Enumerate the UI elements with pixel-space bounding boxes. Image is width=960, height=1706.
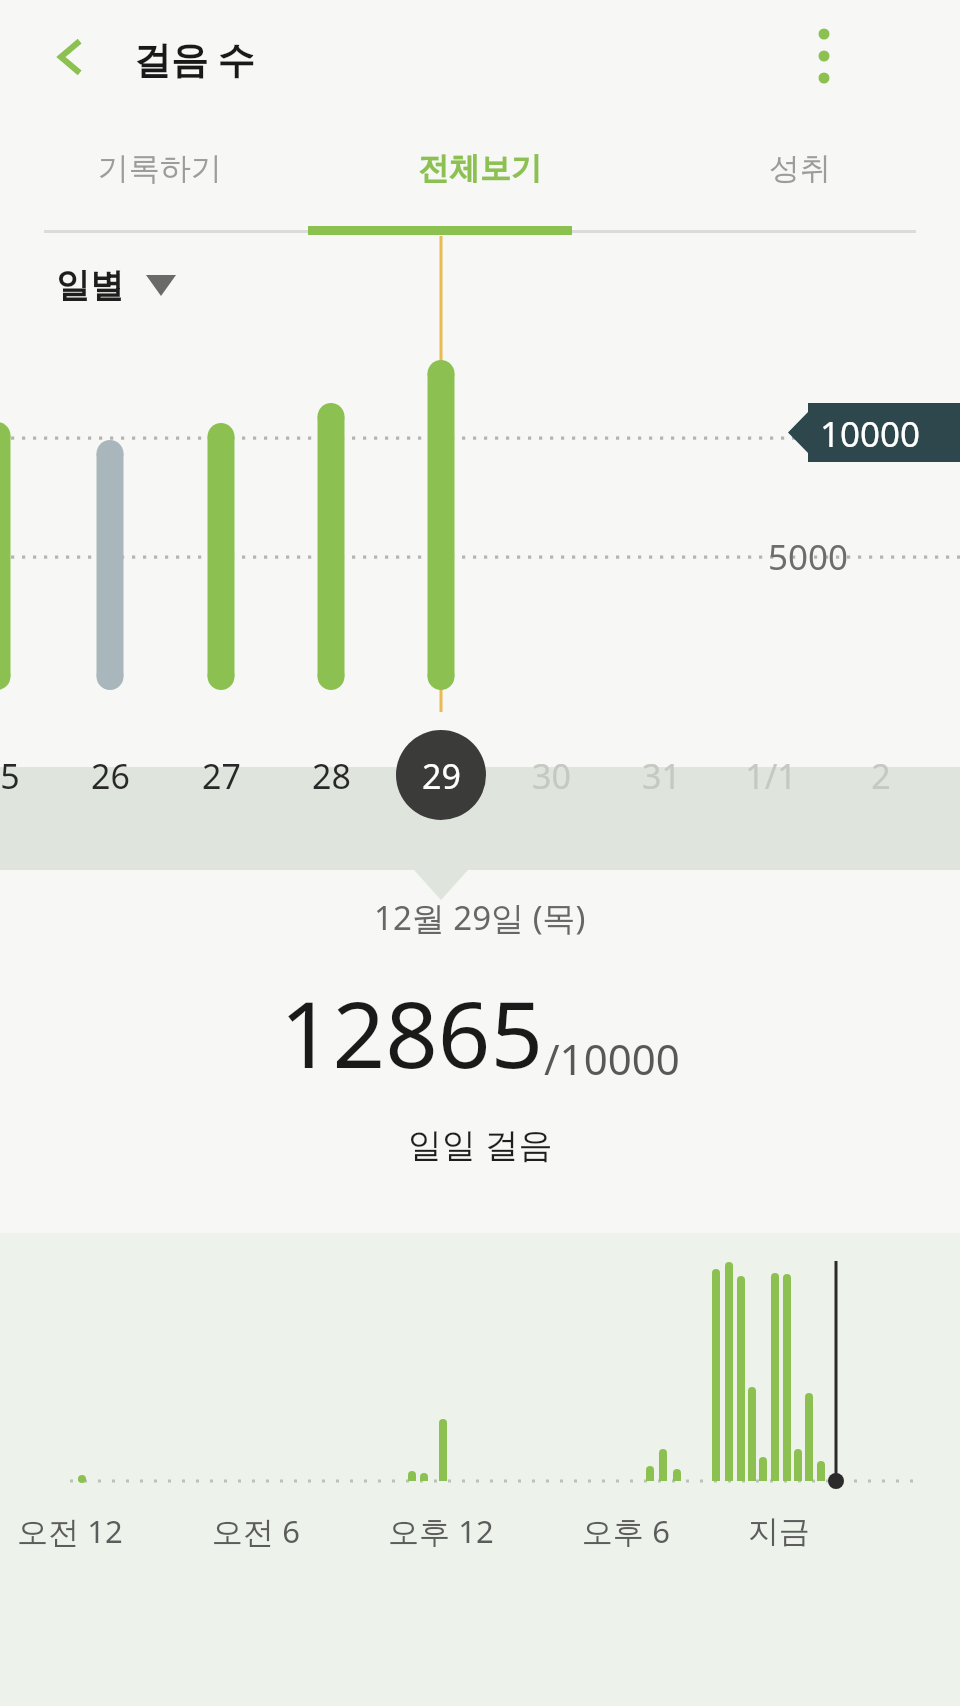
staticText: 걸음 수: [134, 33, 255, 84]
staticText: 성취: [769, 149, 831, 188]
button[interactable]: 28: [286, 747, 376, 805]
staticText: 27: [202, 753, 241, 799]
staticText: 기록하기: [98, 149, 222, 188]
staticText: 28: [312, 753, 351, 799]
button[interactable]: 26: [65, 747, 155, 805]
staticText: 26: [91, 753, 130, 799]
staticText: 오후 12: [388, 1510, 494, 1552]
button[interactable]: Back: [34, 20, 108, 94]
staticText: /10000: [544, 1030, 680, 1087]
button[interactable]: 5: [0, 747, 55, 805]
staticText: 12865: [280, 970, 544, 1095]
button[interactable]: More options: [782, 14, 866, 98]
button[interactable]: 29: [396, 747, 486, 805]
staticText: 30: [532, 753, 571, 799]
button[interactable]: 기록하기: [0, 118, 320, 218]
button[interactable]: 2: [836, 747, 926, 805]
staticText: 일일 걸음: [408, 1121, 553, 1167]
staticText: 5: [0, 753, 20, 799]
button[interactable]: 31: [616, 747, 706, 805]
button[interactable]: 전체보기: [320, 118, 640, 218]
staticText: 1/1: [745, 753, 797, 799]
staticText: 전체보기: [418, 149, 542, 188]
staticText: 오전 12: [17, 1510, 123, 1552]
staticText: 31: [642, 753, 681, 799]
button[interactable]: 성취: [640, 118, 960, 218]
staticText: 29: [422, 753, 461, 799]
button[interactable]: 일별: [56, 258, 176, 312]
staticText: 오전 6: [212, 1510, 300, 1552]
staticText: 10000: [820, 410, 921, 458]
button[interactable]: 1/1: [726, 747, 816, 805]
staticText: 지금: [748, 1512, 810, 1551]
staticText: 12월 29일 (목): [374, 895, 586, 940]
button[interactable]: 27: [176, 747, 266, 805]
staticText: 2: [871, 753, 891, 799]
button[interactable]: 30: [506, 747, 596, 805]
button[interactable]: 오전 12: [0, 1233, 960, 1706]
staticText: 5000: [768, 533, 849, 581]
staticText: 오후 6: [582, 1510, 670, 1552]
staticText: 일별: [56, 264, 124, 307]
